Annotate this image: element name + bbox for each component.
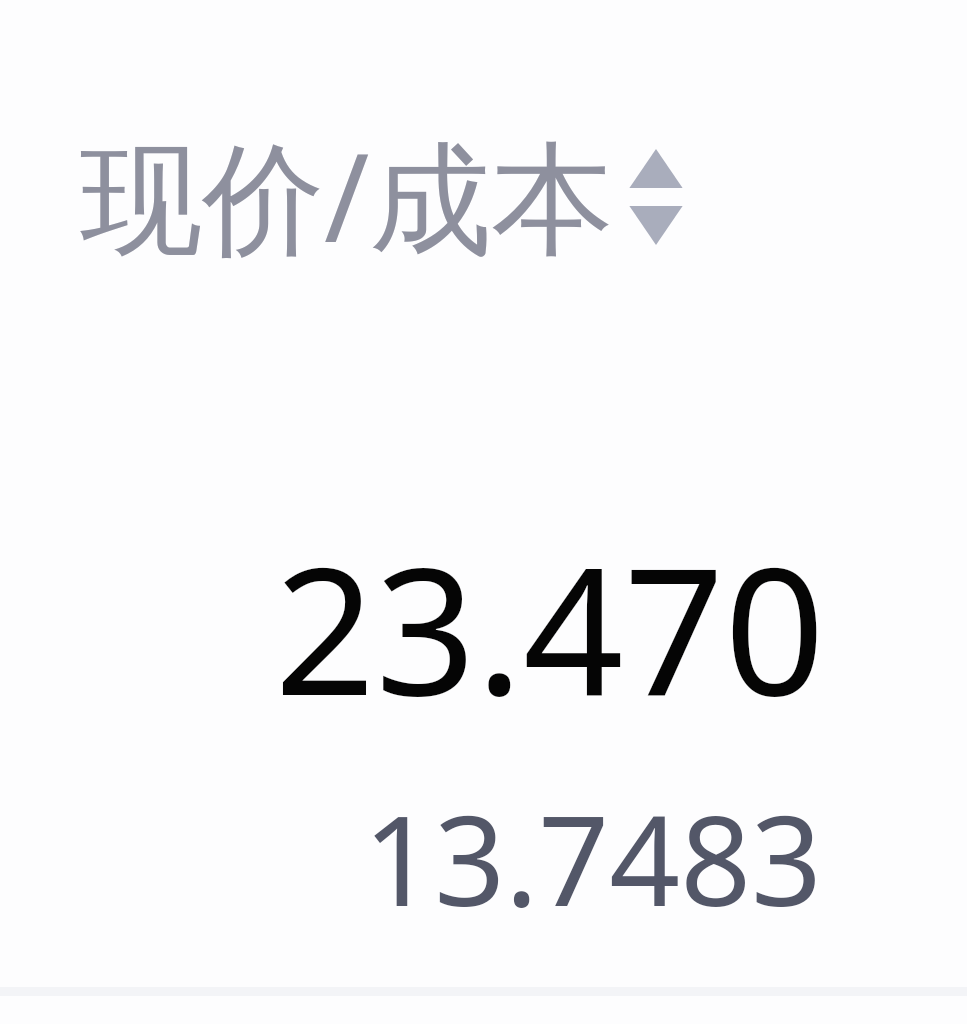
button[interactable]: 13.7483 [0,773,822,942]
button[interactable]: 现价/成本 [80,112,967,279]
other: Sort by current price / cost [628,146,684,246]
staticText: 现价/成本 [80,112,614,279]
staticText: 23.470 [274,507,825,747]
staticText: 13.7483 [363,773,822,942]
button[interactable]: 23.470 [0,507,825,747]
